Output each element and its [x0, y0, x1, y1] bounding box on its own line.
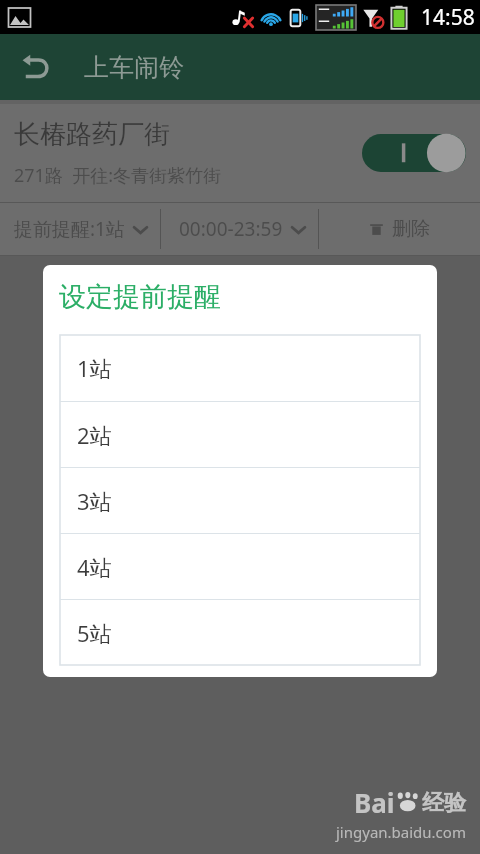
button[interactable]: 5站 [60, 600, 420, 665]
staticText: 271路 开往:冬青街紫竹街 [14, 163, 222, 188]
staticText: Bai [354, 785, 395, 820]
button[interactable]: 删除 [319, 203, 480, 255]
staticText: 4站 [77, 552, 112, 582]
button[interactable]: 4站 [60, 534, 420, 599]
staticText: 长椿路药厂街 [14, 118, 170, 151]
button[interactable]: Enable alarm [362, 132, 466, 174]
button[interactable]: Back [10, 41, 62, 93]
button[interactable]: 00:00-23:59 [161, 203, 318, 255]
staticText: 经验 [422, 789, 466, 817]
button[interactable]: 提前提醒:1站 [0, 203, 160, 255]
staticText: 00:00-23:59 [179, 216, 283, 242]
staticText: 设定提前提醒 [59, 280, 221, 314]
staticText: 上车闹铃 [84, 52, 184, 83]
staticText: 3站 [77, 486, 112, 516]
staticText: 删除 [392, 217, 430, 241]
button[interactable]: 3站 [60, 468, 420, 533]
staticText: 提前提醒:1站 [14, 216, 125, 242]
staticText: 5站 [77, 618, 112, 648]
button[interactable]: 2站 [60, 402, 420, 467]
staticText: 1站 [77, 353, 112, 383]
button[interactable]: 1站 [60, 335, 420, 401]
staticText: 2站 [77, 420, 112, 450]
staticText: jingyan.baidu.com [336, 822, 466, 842]
staticText: 14:58 [421, 3, 475, 32]
